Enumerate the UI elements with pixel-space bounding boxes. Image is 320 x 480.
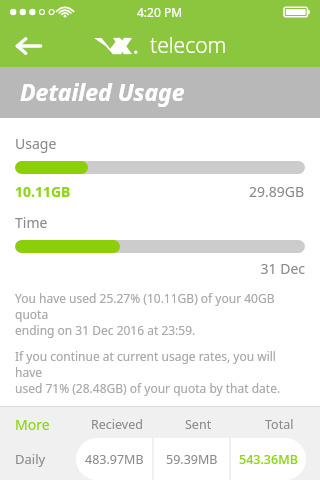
button[interactable]: Back	[6, 26, 50, 66]
staticText: If you continue at current usage rates, …	[15, 348, 305, 396]
staticText: 543.36MB	[239, 451, 298, 468]
button[interactable]: Daily	[0, 438, 320, 480]
staticText: telecom	[150, 31, 227, 60]
staticText: 10.11GB	[15, 182, 71, 201]
staticText: Total	[265, 416, 294, 433]
staticText: 4:20 PM	[137, 4, 183, 20]
staticText: 483.97MB	[85, 451, 144, 468]
staticText: Daily	[15, 450, 46, 468]
staticText: Usage	[15, 134, 57, 153]
button[interactable]: More	[0, 413, 76, 435]
staticText: Detailed Usage	[20, 76, 185, 107]
staticText: Sent	[185, 416, 212, 433]
staticText: 29.89GB	[249, 182, 305, 201]
staticText: Time	[15, 213, 48, 232]
staticText: You have used 25.27% (10.11GB) of your 4…	[15, 290, 305, 338]
staticText: Recieved	[91, 416, 143, 433]
staticText: 31 Dec	[15, 259, 305, 278]
staticText: More	[15, 415, 50, 434]
staticText: 59.39MB	[166, 451, 218, 468]
